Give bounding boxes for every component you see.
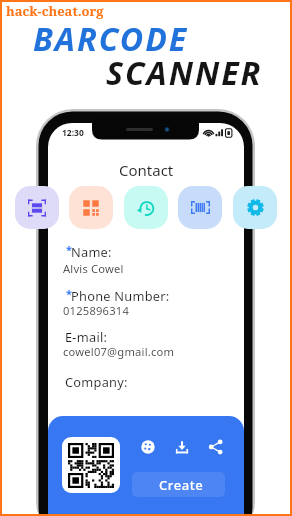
button[interactable]: Scan product	[178, 186, 222, 229]
button[interactable]: Download	[174, 439, 190, 455]
staticText: BARCODE	[33, 17, 189, 61]
staticText: Create	[159, 476, 204, 494]
staticText: 0125896314	[63, 303, 129, 318]
button[interactable]: QR code	[62, 437, 120, 493]
staticText: *	[66, 286, 72, 301]
staticText: Phone Number:	[71, 287, 170, 304]
button[interactable]: Settings	[233, 186, 277, 229]
button[interactable]: History	[124, 186, 168, 229]
staticText: E-mail:	[65, 328, 108, 345]
staticText: SCANNER	[106, 51, 263, 95]
button[interactable]: Create	[132, 472, 225, 497]
staticText: hack-cheat.org	[6, 2, 104, 20]
staticText: cowel07@gmail.com	[63, 344, 175, 359]
staticText: 12:30	[62, 127, 84, 139]
staticText: Contact	[119, 160, 174, 180]
button[interactable]: Customize colours	[140, 439, 156, 455]
staticText: Name:	[71, 243, 112, 260]
staticText: *	[66, 242, 72, 257]
staticText: Company:	[65, 373, 128, 390]
button[interactable]: Scan barcode	[15, 186, 59, 229]
staticText: Alvis Cowel	[63, 261, 124, 276]
button[interactable]: Generate QR code	[69, 186, 113, 229]
button[interactable]: Share	[208, 439, 224, 455]
